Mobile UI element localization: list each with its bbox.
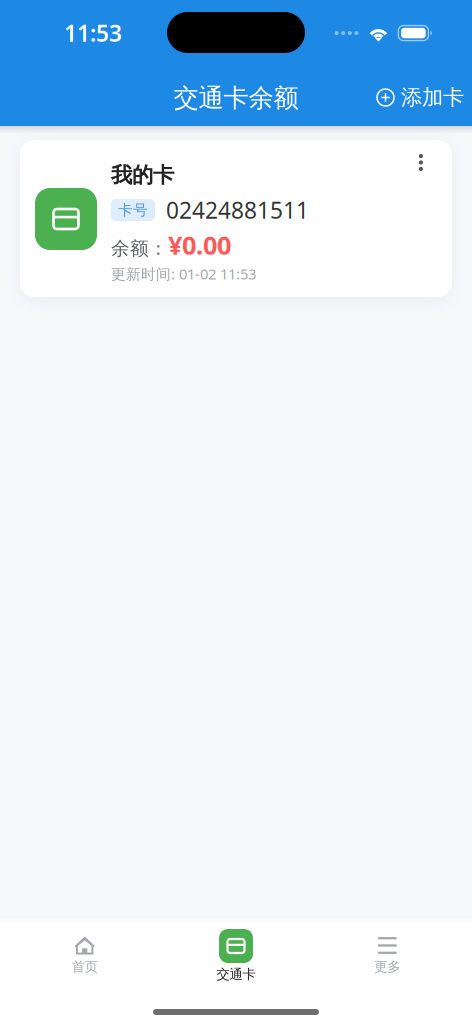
staticText: 我的卡 <box>111 162 174 188</box>
staticText: 余额： <box>111 237 168 260</box>
staticText: 更多 <box>374 958 400 975</box>
staticText: 添加卡 <box>401 84 464 111</box>
button[interactable]: 添加卡 <box>371 77 470 118</box>
button[interactable]: 更多 <box>312 930 463 981</box>
staticText: ¥0.00 <box>168 228 231 262</box>
button[interactable]: 首页 <box>9 930 160 981</box>
staticText: 11:53 <box>64 18 122 48</box>
staticText: 卡号 <box>118 201 148 219</box>
button[interactable]: 交通卡 <box>160 925 312 986</box>
staticText: 交通卡余额 <box>173 82 298 113</box>
button[interactable]: More options <box>407 142 435 183</box>
staticText: 交通卡 <box>216 966 255 982</box>
staticText: 首页 <box>72 958 98 975</box>
staticText: 更新时间: 01-02 11:53 <box>111 264 256 283</box>
staticText: 02424881511 <box>166 195 309 225</box>
